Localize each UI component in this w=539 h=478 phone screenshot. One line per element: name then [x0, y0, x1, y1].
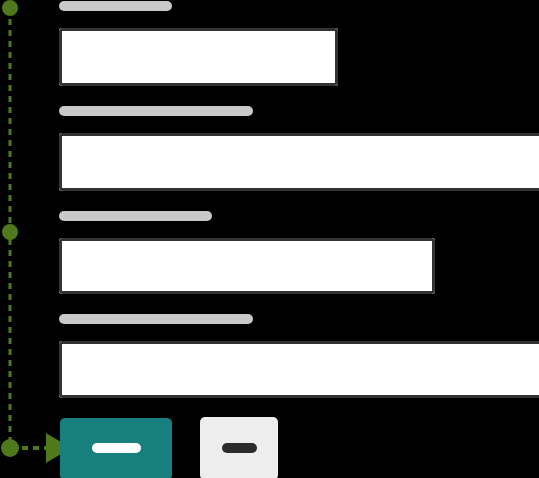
- button[interactable]: Field 2: [59, 133, 539, 191]
- button[interactable]: Secondary action: [200, 417, 278, 478]
- button[interactable]: Field 1: [59, 28, 338, 86]
- button[interactable]: Primary action: [60, 418, 172, 478]
- button[interactable]: Field 3: [59, 238, 435, 294]
- button[interactable]: Field 4: [59, 341, 539, 398]
